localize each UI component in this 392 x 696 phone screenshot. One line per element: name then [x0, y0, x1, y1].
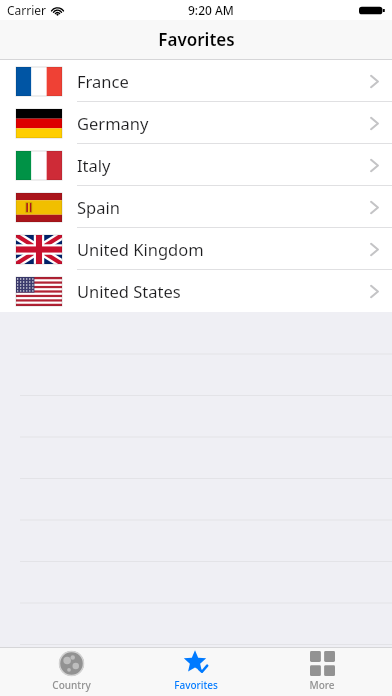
staticText: Country: [52, 678, 91, 692]
staticText: Italy: [77, 154, 111, 176]
other: Favorites: [184, 651, 209, 676]
staticText: France: [77, 70, 129, 92]
button[interactable]: More: [267, 647, 377, 696]
staticText: Germany: [77, 112, 149, 134]
staticText: Spain: [77, 196, 120, 218]
button[interactable]: France: [0, 60, 392, 102]
staticText: Favorites: [174, 678, 218, 692]
staticText: Favorites: [158, 28, 235, 51]
staticText: More: [309, 678, 335, 692]
staticText: United Kingdom: [77, 238, 204, 260]
button[interactable]: Italy: [0, 144, 392, 186]
staticText: United States: [77, 280, 181, 302]
other: Country: [59, 651, 84, 676]
staticText: Carrier: [7, 2, 47, 18]
button[interactable]: United Kingdom: [0, 228, 392, 270]
button[interactable]: Favorites: [141, 647, 251, 696]
other: More: [310, 651, 335, 676]
staticText: 9:20 AM: [188, 2, 234, 18]
button[interactable]: United States: [0, 270, 392, 312]
button[interactable]: Germany: [0, 102, 392, 144]
button[interactable]: Country: [16, 647, 126, 696]
button[interactable]: Spain: [0, 186, 392, 228]
